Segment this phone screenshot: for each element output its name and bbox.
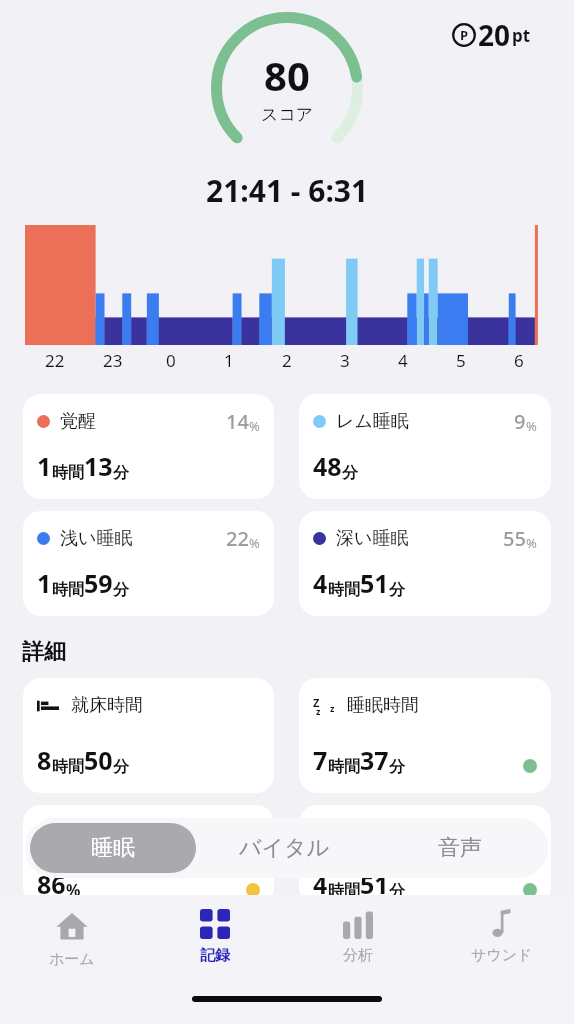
staticText: 4 xyxy=(313,867,328,901)
staticText: レム睡眠 xyxy=(336,410,409,433)
staticText: % xyxy=(526,417,537,435)
button[interactable]: 音声 xyxy=(372,823,548,873)
button[interactable]: Points xyxy=(452,16,552,54)
staticText: % xyxy=(526,534,537,552)
staticText: 分析 xyxy=(343,946,373,965)
button[interactable]: 睡眠 xyxy=(30,823,196,873)
staticText: z xyxy=(330,702,335,714)
staticText: サウンド xyxy=(471,946,533,965)
staticText: 時間 xyxy=(52,757,84,777)
button[interactable]: Z xyxy=(299,678,551,793)
button[interactable]: レム睡眠 xyxy=(299,394,551,499)
staticText: 睡眠時間 xyxy=(347,694,419,717)
staticText: 深い睡眠 xyxy=(336,527,409,550)
staticText: 覚醒 xyxy=(60,410,96,433)
staticText: ホーム xyxy=(49,950,95,969)
button[interactable]: 記録 xyxy=(143,905,286,965)
staticText: 6 xyxy=(514,349,524,372)
staticText: 51 xyxy=(360,867,389,901)
staticText: 23 xyxy=(103,349,123,372)
staticText: 13 xyxy=(84,449,113,483)
staticText: Z xyxy=(313,695,320,710)
button[interactable]: 分析 xyxy=(286,905,430,965)
button[interactable]: 覚醒 xyxy=(23,394,274,499)
staticText: 50 xyxy=(84,743,113,777)
staticText: P xyxy=(460,26,469,44)
staticText: 分 xyxy=(342,463,358,483)
staticText: 48 xyxy=(313,449,342,483)
staticText: 20 xyxy=(478,16,511,54)
button[interactable]: 4 xyxy=(299,805,551,905)
staticText: 80 xyxy=(264,48,310,102)
staticText: 4 xyxy=(398,349,408,372)
staticText: 分 xyxy=(113,580,129,600)
staticText: 時間 xyxy=(328,580,360,600)
staticText: 0 xyxy=(166,349,176,372)
staticText: % xyxy=(249,417,260,435)
staticText: 51 xyxy=(360,566,389,600)
staticText: スコア xyxy=(261,104,314,125)
staticText: 分 xyxy=(389,881,405,901)
staticText: 7 xyxy=(313,743,328,777)
staticText: 分 xyxy=(113,463,129,483)
button[interactable]: 就床時間 xyxy=(23,678,274,793)
staticText: 分 xyxy=(389,757,405,777)
staticText: 時間 xyxy=(328,757,360,777)
button[interactable]: バイタル xyxy=(196,823,372,873)
staticText: 浅い睡眠 xyxy=(60,527,133,550)
staticText: 9 xyxy=(514,408,526,435)
staticText: 14 xyxy=(226,408,249,435)
staticText: 時間 xyxy=(52,580,84,600)
staticText: 就床時間 xyxy=(71,694,143,717)
staticText: 59 xyxy=(84,566,113,600)
staticText: 22 xyxy=(45,349,65,372)
staticText: 1 xyxy=(224,349,234,372)
staticText: 分 xyxy=(113,757,129,777)
staticText: 3 xyxy=(340,349,350,372)
staticText: 1 xyxy=(37,566,52,600)
staticText: 37 xyxy=(360,743,389,777)
staticText: 22 xyxy=(226,525,249,552)
staticText: 55 xyxy=(503,525,526,552)
staticText: 21:41 - 6:31 xyxy=(206,170,369,211)
button[interactable]: 浅い睡眠 xyxy=(23,511,274,616)
staticText: % xyxy=(66,879,81,901)
staticText: 1 xyxy=(37,449,52,483)
staticText: バイタル xyxy=(239,834,330,862)
staticText: 詳細 xyxy=(22,638,66,666)
staticText: 睡眠 xyxy=(91,834,135,862)
staticText: 5 xyxy=(456,349,466,372)
button[interactable]: サウンド xyxy=(430,905,574,965)
staticText: 分 xyxy=(389,580,405,600)
staticText: 時間 xyxy=(328,881,360,901)
button[interactable]: ホーム xyxy=(0,905,143,969)
staticText: 86 xyxy=(37,867,66,901)
staticText: 記録 xyxy=(200,946,230,965)
button[interactable]: 深い睡眠 xyxy=(299,511,551,616)
staticText: 8 xyxy=(37,743,52,777)
staticText: 4 xyxy=(313,566,328,600)
staticText: z xyxy=(316,705,321,717)
button[interactable]: 86 xyxy=(23,805,274,905)
staticText: 2 xyxy=(282,349,292,372)
staticText: 時間 xyxy=(52,463,84,483)
staticText: 音声 xyxy=(438,834,482,862)
staticText: % xyxy=(249,534,260,552)
staticText: pt xyxy=(512,24,531,47)
